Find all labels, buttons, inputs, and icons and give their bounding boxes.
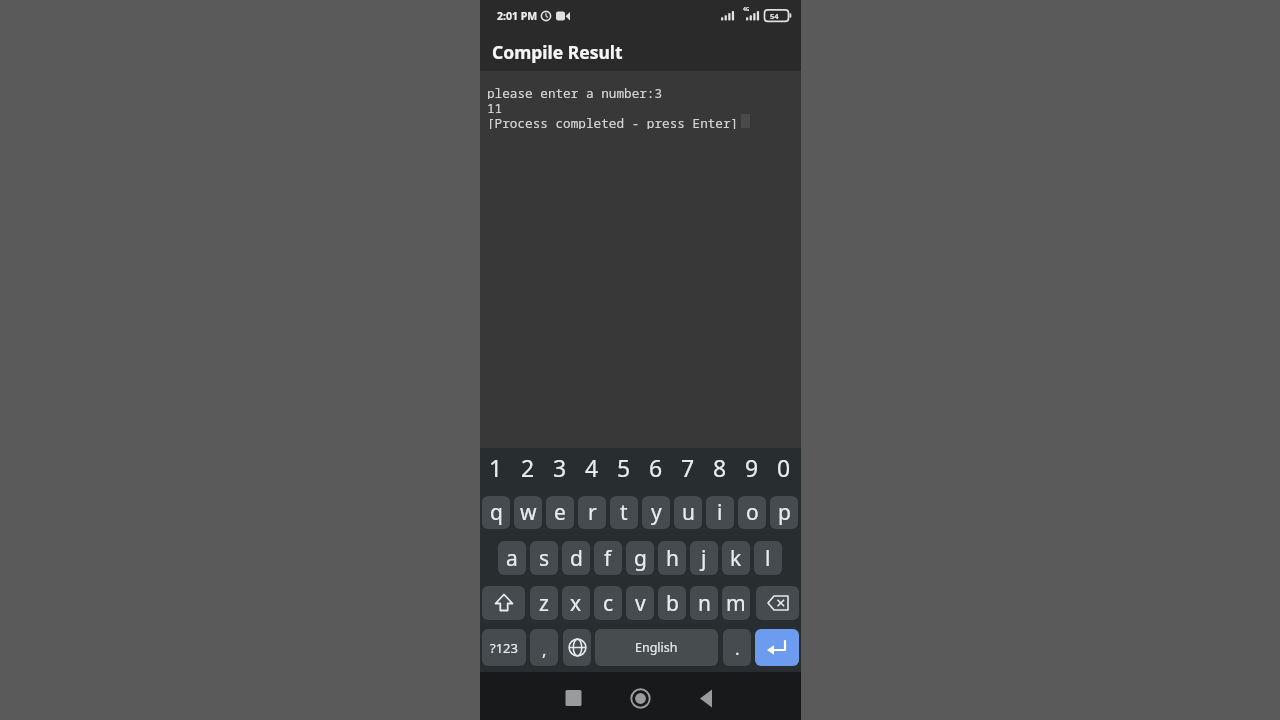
button[interactable]	[624, 682, 657, 715]
button[interactable]: s	[530, 541, 558, 575]
button[interactable]: 1	[482, 452, 510, 482]
staticText: n	[698, 589, 711, 618]
staticText: e	[554, 498, 566, 527]
staticText: v	[635, 589, 646, 618]
button[interactable]: l	[754, 541, 782, 575]
button[interactable]: i	[706, 496, 734, 529]
button[interactable]	[557, 682, 590, 715]
staticText: u	[682, 498, 695, 527]
button[interactable]: b	[658, 586, 686, 620]
staticText: z	[539, 589, 549, 618]
button[interactable]	[691, 682, 724, 715]
button[interactable]: n	[690, 586, 718, 620]
staticText: 8	[713, 452, 727, 482]
button[interactable]: t	[610, 496, 638, 529]
staticText: .	[735, 637, 740, 660]
button[interactable]: y	[642, 496, 670, 529]
staticText: English	[635, 639, 678, 656]
button[interactable]: w	[514, 496, 542, 529]
staticText: h	[666, 544, 679, 573]
staticText: j	[701, 544, 707, 573]
button[interactable]: 5	[610, 452, 638, 482]
staticText: ?123	[490, 639, 518, 657]
button[interactable]: o	[738, 496, 766, 529]
button[interactable]: k	[722, 541, 750, 575]
button[interactable]	[482, 586, 525, 620]
staticText: s	[539, 544, 550, 573]
button[interactable]: 6	[642, 452, 670, 482]
staticText: 2:01 PM	[497, 9, 538, 23]
staticText: f	[604, 544, 612, 573]
staticText: 9	[745, 452, 759, 482]
staticText: t	[620, 498, 628, 527]
staticText: x	[570, 589, 582, 618]
staticText: 54	[770, 11, 779, 21]
button[interactable]: a	[498, 541, 526, 575]
staticText: r	[588, 498, 597, 527]
staticText: 7	[681, 452, 695, 482]
button[interactable]: 0	[770, 452, 798, 482]
staticText: 2	[521, 452, 535, 482]
button[interactable]: j	[690, 541, 718, 575]
button[interactable]: 2	[514, 452, 542, 482]
button[interactable]: d	[562, 541, 590, 575]
staticText: y	[651, 498, 662, 527]
button[interactable]: p	[770, 496, 798, 529]
staticText: d	[570, 544, 583, 573]
staticText: 3	[553, 452, 567, 482]
button[interactable]: ,	[530, 629, 558, 666]
button[interactable]: g	[626, 541, 654, 575]
button[interactable]: u	[674, 496, 702, 529]
button[interactable]: r	[578, 496, 606, 529]
staticText: 1	[489, 452, 503, 482]
staticText: l	[765, 544, 771, 573]
staticText: Compile Result	[492, 40, 623, 64]
staticText: o	[746, 498, 759, 527]
staticText: b	[666, 589, 679, 618]
button[interactable]: ?123	[482, 629, 526, 666]
staticText: 4G	[743, 6, 750, 13]
button[interactable]: 9	[738, 452, 766, 482]
button[interactable]: c	[594, 586, 622, 620]
button[interactable]: 8	[706, 452, 734, 482]
button[interactable]: e	[546, 496, 574, 529]
button[interactable]	[755, 629, 799, 666]
button[interactable]: Compile Result	[480, 32, 801, 71]
button[interactable]: z	[530, 586, 558, 620]
staticText: 11	[487, 99, 503, 114]
staticText: k	[730, 544, 742, 573]
staticText: 0	[777, 452, 791, 482]
button[interactable]: x	[562, 586, 590, 620]
staticText: [Process completed - press Enter]	[487, 114, 739, 129]
staticText: i	[717, 498, 723, 527]
button[interactable]: please enter a number:3	[480, 71, 801, 448]
staticText: 6	[649, 452, 663, 482]
button[interactable]: 3	[546, 452, 574, 482]
button[interactable]: q	[482, 496, 510, 529]
staticText: 4	[585, 452, 599, 482]
button[interactable]: .	[723, 629, 751, 666]
staticText: g	[634, 544, 647, 573]
button[interactable]: 7	[674, 452, 702, 482]
button[interactable]: 4	[578, 452, 606, 482]
staticText: w	[520, 498, 537, 527]
staticText: 5	[617, 452, 631, 482]
button[interactable]: m	[722, 586, 750, 620]
staticText: a	[506, 544, 518, 573]
button[interactable]	[756, 586, 799, 620]
staticText: q	[490, 498, 503, 527]
button[interactable]: h	[658, 541, 686, 575]
staticText: c	[603, 589, 614, 618]
button[interactable]: English	[595, 629, 718, 666]
staticText: p	[778, 498, 791, 527]
staticText: m	[726, 589, 746, 618]
button[interactable]: f	[594, 541, 622, 575]
button[interactable]: v	[626, 586, 654, 620]
button[interactable]	[563, 629, 591, 666]
staticText: please enter a number:3	[487, 84, 663, 99]
staticText: ,	[542, 638, 547, 661]
